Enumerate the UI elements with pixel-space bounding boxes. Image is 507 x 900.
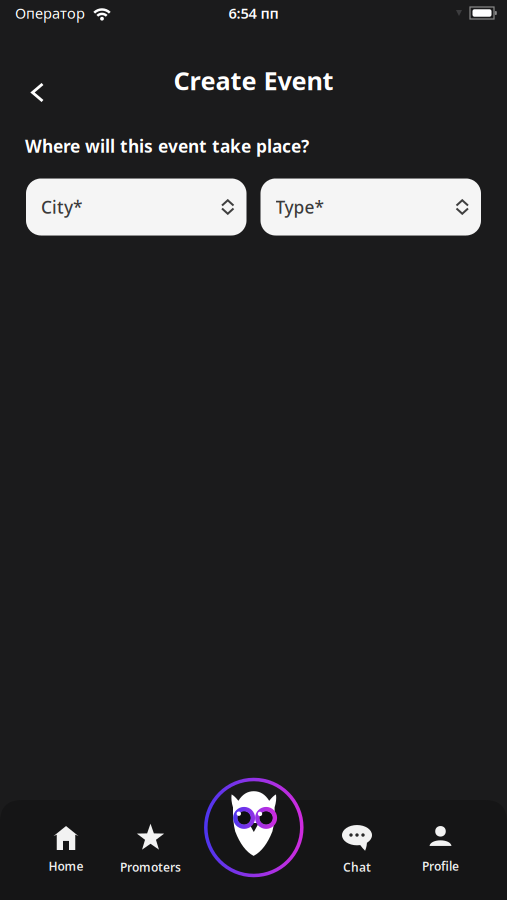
button[interactable]: Promoters	[107, 819, 193, 881]
button[interactable]: Back	[15, 70, 59, 114]
button[interactable]: Chat	[314, 819, 400, 881]
staticText: Profile	[422, 858, 459, 874]
staticText: Where will this event take place?	[25, 134, 309, 157]
staticText: Promoters	[120, 859, 181, 875]
staticText: City*	[41, 195, 82, 218]
staticText: Type*	[275, 195, 323, 218]
staticText: Chat	[343, 859, 371, 875]
staticText: Оператор	[15, 3, 85, 23]
staticText: Home	[48, 858, 83, 874]
button[interactable]: Home	[23, 819, 109, 881]
button[interactable]: Type*	[260, 178, 481, 235]
button[interactable]: City*	[26, 178, 246, 235]
button[interactable]: Create	[199, 772, 309, 882]
staticText: 6:54 пп	[228, 3, 278, 23]
button[interactable]: Profile	[397, 819, 483, 881]
staticText: Create Event	[173, 64, 333, 97]
